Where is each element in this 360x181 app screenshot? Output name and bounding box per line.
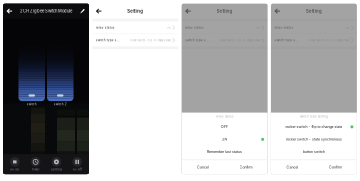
staticText: rocker switch - flip to change state — [308, 39, 349, 42]
button[interactable]: ON — [182, 133, 268, 146]
staticText: rocker switch - flip to change state — [130, 39, 171, 42]
button[interactable]: Edit — [76, 4, 89, 19]
button[interactable]: Cancel — [182, 160, 225, 174]
staticText: ON — [222, 137, 228, 141]
staticText: Remember last status — [207, 150, 242, 154]
staticText: Setting — [217, 8, 233, 14]
staticText: button switch — [303, 150, 325, 154]
button[interactable]: Remember last status — [182, 146, 268, 158]
button[interactable]: All On — [6, 156, 24, 172]
staticText: ON — [167, 26, 171, 29]
staticText: relay status — [96, 26, 115, 29]
button[interactable]: Back — [3, 4, 16, 19]
button[interactable]: Back — [182, 4, 195, 19]
staticText: switch type s... — [96, 38, 120, 42]
button[interactable]: All Off — [68, 156, 86, 172]
button[interactable]: button switch — [271, 146, 357, 158]
button[interactable]: rocker switch - state synchronous — [271, 133, 357, 146]
staticText: Confirm — [329, 165, 342, 169]
staticText: relay status — [185, 26, 204, 29]
staticText: Cancel — [286, 165, 298, 169]
staticText: All Off — [73, 168, 82, 171]
button[interactable]: switch 2 — [47, 47, 73, 106]
staticText: Timer — [32, 168, 40, 171]
button[interactable]: Timer — [27, 156, 45, 172]
staticText: switch 2 — [54, 102, 67, 106]
staticText: rocker switch - flip to change state — [219, 39, 260, 42]
staticText: switch — [27, 102, 37, 106]
staticText: switch type s... — [274, 38, 298, 42]
staticText: Setting — [127, 8, 143, 14]
staticText: Setting — [306, 8, 322, 14]
staticText: Cancel — [197, 165, 209, 169]
button[interactable]: switch — [18, 47, 45, 106]
button[interactable]: relay status — [271, 22, 357, 34]
button[interactable]: switch type s... — [271, 34, 357, 46]
button[interactable]: Confirm — [225, 160, 268, 174]
button[interactable]: relay status — [92, 22, 178, 34]
staticText: 2CH Zigbee Switch Module — [20, 9, 72, 14]
staticText: switch type s... — [185, 38, 209, 42]
staticText: All On — [10, 168, 19, 171]
button[interactable]: Back — [92, 4, 105, 19]
staticText: rocker switch - state synchronous — [286, 137, 342, 141]
button[interactable]: relay status — [182, 22, 268, 34]
button[interactable]: Cancel — [271, 160, 314, 174]
button[interactable]: Setting — [47, 156, 65, 172]
button[interactable]: switch type s... — [92, 34, 178, 46]
staticText: ON — [345, 26, 349, 29]
staticText: Setting — [51, 168, 62, 171]
staticText: rocker switch - flip to change state — [285, 125, 342, 129]
button[interactable]: OFF — [182, 121, 268, 133]
staticText: Confirm — [240, 165, 253, 169]
button[interactable]: Confirm — [314, 160, 357, 174]
staticText: OFF — [221, 125, 228, 129]
staticText: switch type setting — [300, 115, 328, 118]
staticText: ON — [256, 26, 260, 29]
button[interactable]: Back — [271, 4, 284, 19]
staticText: relay status — [216, 115, 233, 118]
button[interactable]: switch type s... — [182, 34, 268, 46]
button[interactable]: rocker switch - flip to change state — [271, 121, 357, 133]
staticText: relay status — [274, 26, 293, 29]
